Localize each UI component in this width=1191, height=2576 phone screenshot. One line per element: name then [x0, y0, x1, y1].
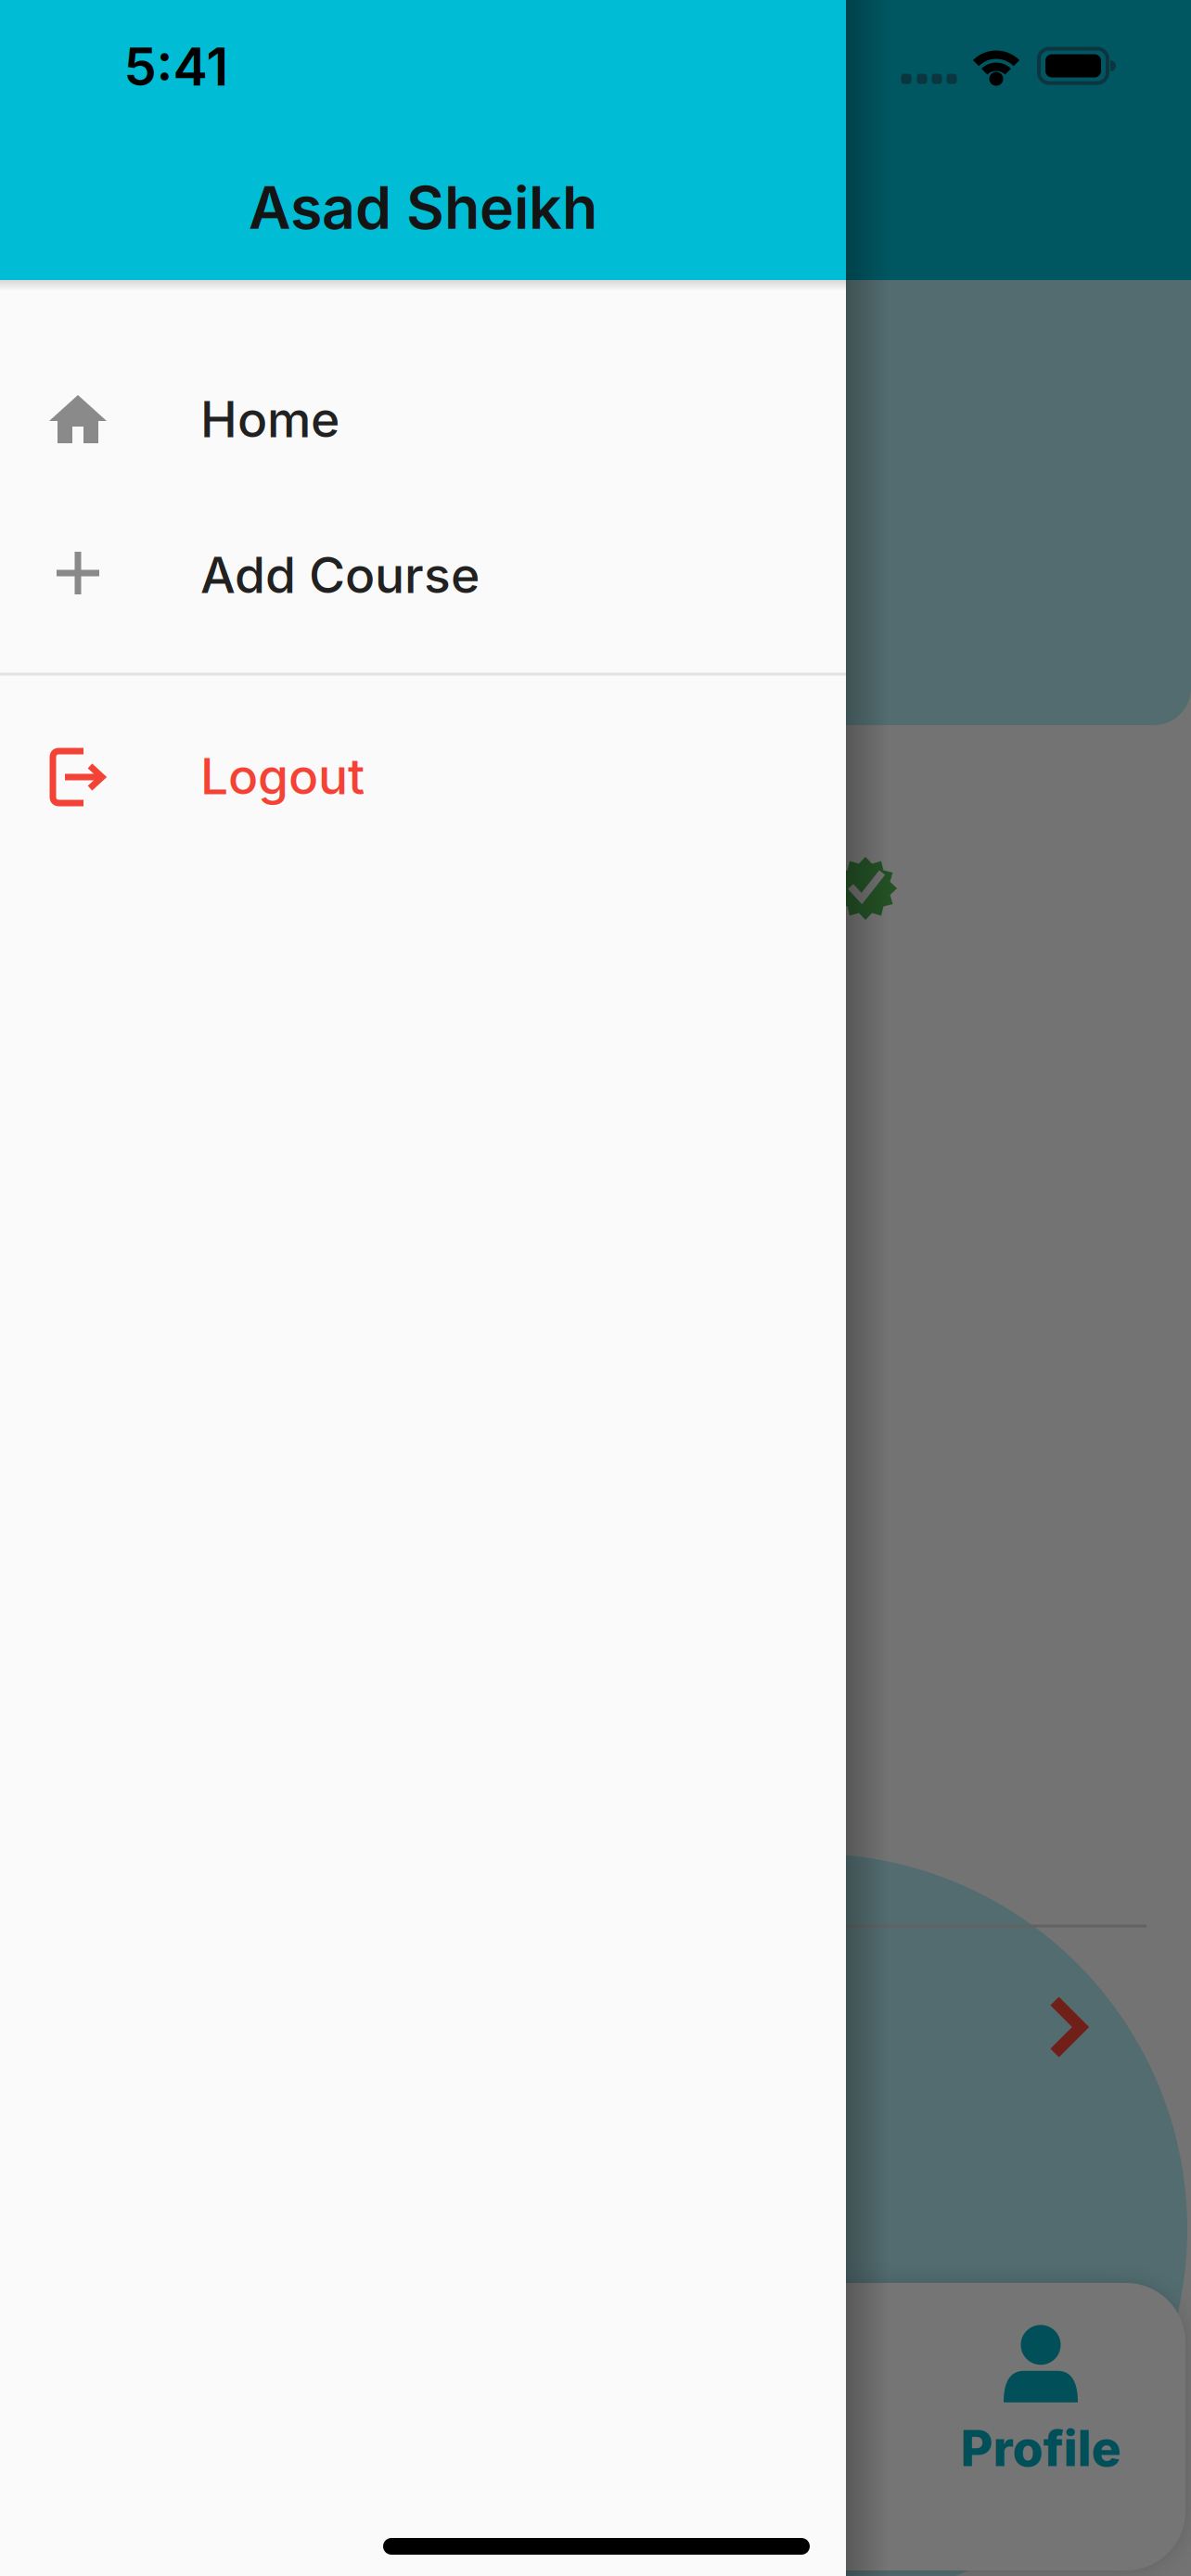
staticText: Asad Sheikh [249, 173, 597, 243]
staticText: Add Course [200, 545, 480, 605]
staticText: Home [200, 389, 339, 449]
staticText: 5:41 [124, 35, 229, 98]
button[interactable]: Profile [897, 2267, 1185, 2536]
button[interactable]: Add Course [0, 497, 846, 653]
button[interactable]: Logout [0, 698, 846, 854]
button[interactable]: Home [0, 341, 846, 497]
staticText: Logout [200, 746, 365, 806]
staticText: Profile [960, 2418, 1121, 2478]
